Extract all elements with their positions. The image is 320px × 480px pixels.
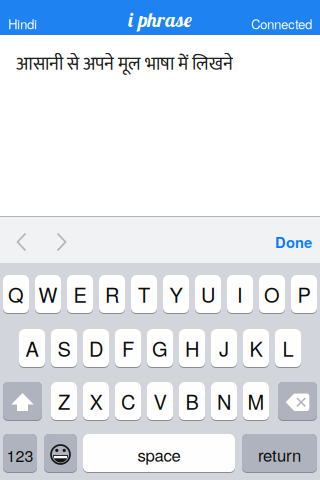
- button[interactable]: Next: [55, 232, 68, 251]
- button[interactable]: F: [115, 329, 141, 368]
- button[interactable]: O: [259, 275, 285, 314]
- button[interactable]: M: [243, 382, 269, 421]
- staticText: Connected: [251, 14, 312, 33]
- button[interactable]: S: [51, 329, 77, 368]
- button[interactable]: K: [243, 329, 269, 368]
- staticText: U: [201, 280, 215, 308]
- button[interactable]: Delete: [278, 382, 317, 421]
- staticText: आसानी से अपने मूल भाषा में लिखने: [16, 49, 233, 80]
- button[interactable]: Connected: [251, 14, 320, 33]
- staticText: M: [247, 387, 264, 415]
- button[interactable]: 123: [3, 434, 37, 473]
- staticText: A: [25, 334, 38, 362]
- button[interactable]: Y: [163, 275, 189, 314]
- staticText: 123: [6, 443, 33, 466]
- button[interactable]: N: [211, 382, 237, 421]
- staticText: L: [282, 334, 293, 362]
- staticText: Y: [169, 280, 182, 308]
- button[interactable]: U: [195, 275, 221, 314]
- button[interactable]: L: [275, 329, 301, 368]
- button[interactable]: I: [227, 275, 253, 314]
- button[interactable]: C: [115, 382, 141, 421]
- staticText: W: [38, 280, 57, 308]
- staticText: H: [185, 334, 199, 362]
- button[interactable]: T: [131, 275, 157, 314]
- staticText: Q: [8, 280, 24, 308]
- staticText: S: [57, 334, 70, 362]
- button[interactable]: i phrase: [128, 7, 192, 32]
- button[interactable]: Done: [275, 231, 320, 252]
- staticText: R: [105, 280, 119, 308]
- staticText: Hindi: [8, 14, 37, 33]
- staticText: J: [219, 334, 229, 362]
- button[interactable]: Hindi: [0, 14, 37, 33]
- button[interactable]: Z: [51, 382, 77, 421]
- staticText: return: [258, 443, 301, 466]
- button[interactable]: D: [83, 329, 109, 368]
- staticText: i phrase: [128, 7, 192, 32]
- staticText: C: [121, 387, 135, 415]
- button[interactable]: G: [147, 329, 173, 368]
- button[interactable]: Previous: [0, 232, 28, 251]
- button[interactable]: E: [67, 275, 93, 314]
- button[interactable]: Q: [3, 275, 29, 314]
- button[interactable]: Shift: [3, 382, 42, 421]
- button[interactable]: X: [83, 382, 109, 421]
- staticText: Z: [58, 387, 70, 415]
- button[interactable]: W: [35, 275, 61, 314]
- button[interactable]: V: [147, 382, 173, 421]
- button[interactable]: B: [179, 382, 205, 421]
- button[interactable]: H: [179, 329, 205, 368]
- staticText: N: [217, 387, 231, 415]
- button[interactable]: Emoji: [44, 434, 77, 473]
- staticText: G: [152, 334, 168, 362]
- staticText: O: [264, 280, 280, 308]
- button[interactable]: space: [83, 434, 235, 473]
- button[interactable]: A: [19, 329, 45, 368]
- button[interactable]: J: [211, 329, 237, 368]
- button[interactable]: return: [242, 434, 317, 473]
- staticText: B: [185, 387, 198, 415]
- button[interactable]: P: [291, 275, 317, 314]
- button[interactable]: R: [99, 275, 125, 314]
- staticText: Done: [275, 231, 312, 252]
- staticText: T: [138, 280, 150, 308]
- staticText: V: [153, 387, 166, 415]
- staticText: X: [89, 387, 102, 415]
- staticText: F: [122, 334, 134, 362]
- staticText: space: [137, 443, 180, 466]
- staticText: P: [297, 280, 310, 308]
- staticText: E: [73, 280, 86, 308]
- staticText: D: [89, 334, 103, 362]
- staticText: K: [249, 334, 262, 362]
- staticText: I: [237, 280, 243, 308]
